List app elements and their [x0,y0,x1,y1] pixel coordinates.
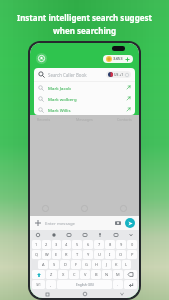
staticText: Q [35,252,39,257]
button[interactable]: . [113,280,123,289]
button[interactable]: 8 [105,240,115,249]
staticText: A [42,262,45,267]
button[interactable]: Q [32,250,41,259]
button[interactable]: B [91,270,101,279]
staticText: Instant intelligent search suggest [6,12,163,23]
button[interactable]: U [94,250,104,259]
button[interactable]: Mark Willis [38,104,131,115]
button[interactable]: Enter [124,280,137,289]
button[interactable]: Keyboard tool 2 [51,232,57,238]
button[interactable]: L [122,260,131,269]
button[interactable]: 7 [94,240,104,249]
button[interactable]: 4 [62,240,71,249]
button[interactable]: 3453 [106,56,130,62]
button[interactable]: D [60,260,70,269]
button[interactable]: Search Caller Book [38,68,131,81]
staticText: V [84,272,87,277]
button[interactable]: Home [82,291,88,297]
staticText: W [45,252,49,257]
button[interactable]: Shift [32,270,45,279]
button[interactable]: 1 [32,240,41,249]
button[interactable]: H [92,260,101,269]
button[interactable]: E [52,250,61,259]
staticText: Contacts [117,117,132,122]
button[interactable]: T [72,250,82,259]
button[interactable]: Recents [44,291,50,297]
button[interactable]: Camera [114,219,122,227]
button[interactable]: A [38,260,48,269]
staticText: N [105,272,109,277]
button[interactable]: Send [125,218,135,228]
button[interactable]: W [42,250,51,259]
staticText: L [125,262,128,267]
staticText: Z [50,272,53,277]
staticText: , [50,282,52,287]
staticText: 5 [76,242,79,247]
button[interactable]: C [69,270,79,279]
staticText: O [119,252,123,257]
staticText: 8 [109,242,112,247]
button[interactable]: English (US) [57,280,112,289]
staticText: 3453 [113,56,123,62]
button[interactable]: Z [46,270,57,279]
button[interactable]: Keyboard tool 6 [113,232,119,238]
button[interactable]: Keyboard tool 4 [82,232,88,238]
button[interactable]: , [46,280,56,289]
button[interactable]: V [80,270,90,279]
button[interactable]: Mark wolberg [38,93,131,104]
staticText: U [98,252,101,257]
button[interactable]: 5 [72,240,82,249]
staticText: when searching [6,25,163,36]
button[interactable]: O [116,250,126,259]
button[interactable]: N [102,270,112,279]
button[interactable]: Back [119,291,125,297]
button[interactable]: J [102,260,111,269]
button[interactable]: 9 [116,240,126,249]
button[interactable]: Keyboard tool 5 [97,232,103,238]
staticText: M [116,272,120,277]
staticText: Mark Jacob [48,85,71,91]
button[interactable]: 2 [42,240,51,249]
button[interactable]: Tab 3 [119,204,128,213]
button[interactable]: G [82,260,91,269]
button[interactable]: 3 [52,240,61,249]
button[interactable]: Keyboard tool 7 [128,232,134,238]
staticText: Mark wolberg [48,96,77,102]
button[interactable]: Backspace [124,270,137,279]
button[interactable]: Y [83,250,93,259]
button[interactable]: M [113,270,123,279]
button[interactable]: P [127,250,137,259]
staticText: K [115,262,118,267]
button[interactable]: Add attachment [34,219,42,227]
button[interactable]: K [112,260,121,269]
button[interactable]: Keyboard tool 3 [66,232,72,238]
staticText: US +1 [114,72,124,77]
button[interactable]: US +1 [108,72,129,77]
button[interactable]: Keyboard tool 1 [35,232,41,238]
staticText: P [131,252,134,257]
staticText: 1 [35,242,38,247]
button[interactable]: 0 [127,240,137,249]
staticText: Search Caller Book [48,72,87,78]
staticText: Enter message [45,220,75,226]
button[interactable]: Profile [36,53,47,64]
staticText: X [62,272,65,277]
staticText: !#1 [36,283,41,287]
staticText: . [117,282,119,287]
staticText: R [65,252,68,257]
button[interactable]: X [58,270,68,279]
button[interactable]: S [49,260,59,269]
staticText: Messages [76,117,93,122]
button[interactable]: 6 [83,240,93,249]
button[interactable]: Tab 1 [41,204,50,213]
staticText: 3 [55,242,58,247]
button[interactable]: Tab 2 [80,204,89,213]
button[interactable]: I [105,250,115,259]
button[interactable]: F [71,260,81,269]
staticText: J [106,262,108,267]
staticText: G [85,262,88,267]
button[interactable]: !#1 [32,280,45,289]
button[interactable]: Mark Jacob [38,82,131,93]
staticText: B [95,272,98,277]
button[interactable]: R [62,250,71,259]
